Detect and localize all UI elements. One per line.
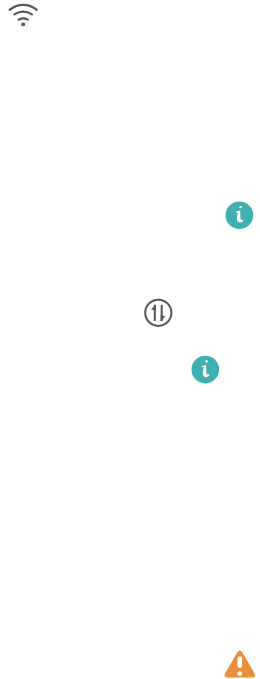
button[interactable]: More information: [224, 200, 255, 231]
button[interactable]: Warning: [222, 645, 258, 679]
button[interactable]: Data transfer: [143, 297, 174, 328]
button[interactable]: More information: [190, 354, 221, 385]
button[interactable]: Wi-Fi connection: [5, 0, 41, 30]
